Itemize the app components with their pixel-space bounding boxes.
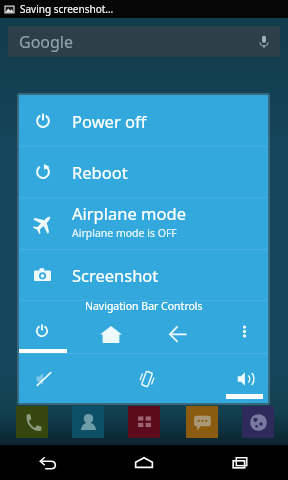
button[interactable]: Screenshot [19,250,268,300]
button[interactable]: Airplane mode [19,198,268,249]
button[interactable]: More [220,314,268,348]
button[interactable]: Back [154,316,202,350]
button[interactable]: Reboot [19,147,268,197]
button[interactable]: Google [8,26,280,57]
button[interactable]: People [72,406,104,438]
button[interactable]: Home [87,317,135,351]
staticText: Airplane mode [72,202,186,224]
button[interactable]: Sound [222,362,270,396]
button[interactable]: Home [96,445,192,480]
button[interactable]: Vibrate [123,362,171,396]
button[interactable]: Power [18,314,66,348]
staticText: Saving screenshot… [20,2,114,16]
staticText: Airplane mode is OFF [72,226,177,240]
staticText: Navigation Bar Controls [85,299,203,313]
button[interactable]: Calculator [128,406,160,438]
button[interactable]: Messaging [186,406,218,438]
button[interactable]: Back [0,445,96,480]
staticText: Google [19,31,74,53]
button[interactable]: Browser [242,406,274,438]
button[interactable]: Phone [16,406,48,438]
staticText: Screenshot [72,264,159,286]
button[interactable]: Power off [19,95,268,146]
staticText: Power off [72,110,147,132]
staticText: Reboot [72,161,128,183]
button[interactable]: Recents [192,445,288,480]
button[interactable]: Silent [20,362,68,396]
other: Voice search [257,35,271,49]
